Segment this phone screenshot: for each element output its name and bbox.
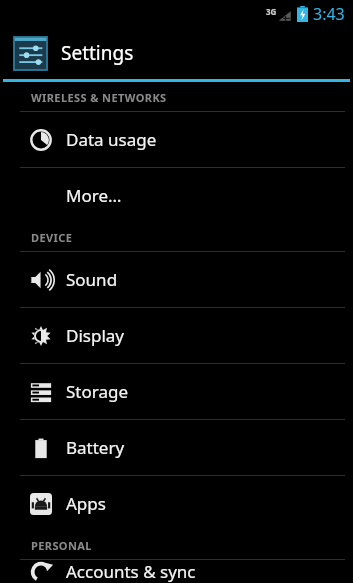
staticText: Sound [66,268,118,291]
staticText: DEVICE [31,230,73,245]
staticText: 3:43 [313,3,345,25]
staticText: Data usage [66,128,157,151]
button[interactable]: Apps [0,476,353,531]
button[interactable]: Display [0,308,353,363]
staticText: Accounts & sync [66,560,196,583]
staticText: Display [66,324,124,347]
button[interactable]: Accounts & sync [0,560,353,583]
button[interactable]: More… [0,168,353,223]
staticText: Apps [66,492,106,515]
staticText: Battery [66,436,125,459]
button[interactable]: Storage [0,364,353,419]
other: Settings [14,37,47,70]
staticText: PERSONAL [31,538,92,553]
staticText: 3G [266,6,277,17]
button[interactable]: Sound [0,252,353,307]
staticText: Settings [61,40,134,66]
staticText: WIRELESS & NETWORKS [31,90,167,105]
button[interactable]: Settings [0,27,353,79]
staticText: More… [66,184,122,207]
button[interactable]: Data usage [0,112,353,167]
button[interactable]: Battery [0,420,353,475]
staticText: Storage [66,380,129,403]
